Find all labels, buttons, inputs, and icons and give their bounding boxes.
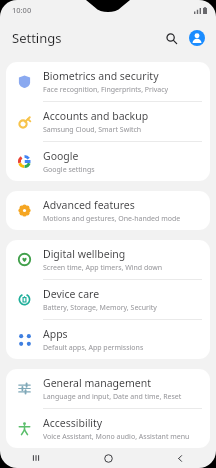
staticText: Screen time, App timers, Wind down — [43, 263, 163, 273]
button[interactable]: Recent apps — [0, 448, 72, 468]
staticText: Biometrics and security — [43, 69, 159, 83]
button[interactable]: Accessibility — [6, 409, 210, 448]
staticText: General management — [43, 376, 151, 390]
button[interactable]: Advanced features — [6, 191, 210, 230]
staticText: Language and input, Date and time, Reset — [43, 392, 182, 402]
staticText: Accounts and backup — [43, 109, 149, 123]
staticText: Voice Assistant, Mono audio, Assistant m… — [43, 432, 190, 442]
staticText: Google — [43, 149, 79, 163]
button[interactable]: Biometrics and security — [6, 62, 210, 102]
button[interactable]: Search — [160, 27, 182, 49]
staticText: Digital wellbeing — [43, 247, 126, 261]
button[interactable]: Google — [6, 142, 210, 181]
button[interactable]: Apps — [6, 320, 210, 359]
staticText: 10:00 — [12, 5, 32, 15]
staticText: Samsung Cloud, Smart Switch — [43, 125, 142, 135]
staticText: Apps — [43, 327, 68, 341]
button[interactable]: General management — [6, 369, 210, 409]
staticText: Settings — [12, 29, 62, 47]
staticText: Device care — [43, 287, 100, 301]
button[interactable]: Account — [186, 27, 208, 49]
button[interactable]: Back — [144, 448, 216, 468]
staticText: Accessibility — [43, 416, 103, 430]
button[interactable]: Accounts and backup — [6, 102, 210, 142]
staticText: Default apps, App permissions — [43, 343, 144, 353]
button[interactable]: Home — [72, 448, 144, 468]
staticText: Face recognition, Fingerprints, Privacy — [43, 85, 169, 95]
staticText: Battery, Storage, Memory, Security — [43, 303, 157, 313]
staticText: Google settings — [43, 165, 95, 175]
button[interactable]: Digital wellbeing — [6, 240, 210, 280]
button[interactable]: Device care — [6, 280, 210, 320]
staticText: Advanced features — [43, 198, 135, 212]
staticText: Motions and gestures, One-handed mode — [43, 214, 181, 224]
